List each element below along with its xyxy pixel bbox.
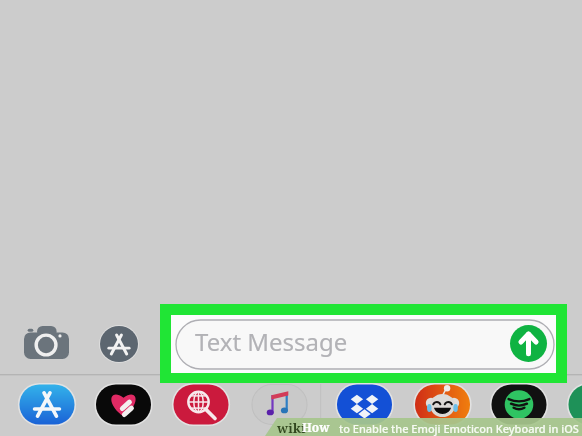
button[interactable]: Take photo (24, 326, 69, 359)
staticText: wiki (277, 419, 306, 436)
button[interactable]: Send (510, 325, 547, 362)
staticText: to Enable the Emoji Emoticon Keyboard in… (339, 421, 579, 436)
button[interactable] (176, 320, 554, 369)
staticText: Text Message (195, 325, 348, 358)
button[interactable]: App Store (100, 326, 138, 362)
staticText: How (302, 419, 330, 435)
